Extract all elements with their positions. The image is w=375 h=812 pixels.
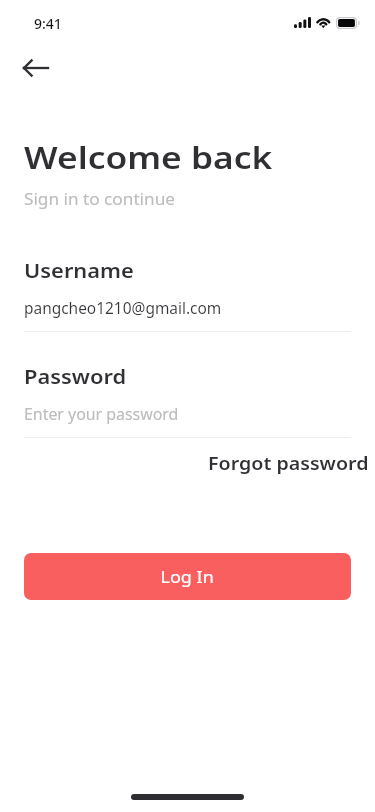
- staticText: 9:41: [34, 14, 63, 33]
- staticText: Welcome back: [24, 136, 272, 178]
- staticText: Sign in to continue: [24, 188, 175, 210]
- staticText: Log In: [160, 565, 215, 588]
- staticText: Password: [24, 364, 126, 390]
- button[interactable]: Back: [12, 56, 60, 104]
- staticText: Enter your password: [24, 403, 179, 425]
- staticText: Forgot password: [208, 452, 368, 475]
- staticText: pangcheo1210@gmail.com: [24, 297, 222, 319]
- button[interactable]: Forgot password: [200, 447, 339, 479]
- staticText: Username: [24, 258, 134, 284]
- button[interactable]: Log In: [24, 553, 351, 600]
